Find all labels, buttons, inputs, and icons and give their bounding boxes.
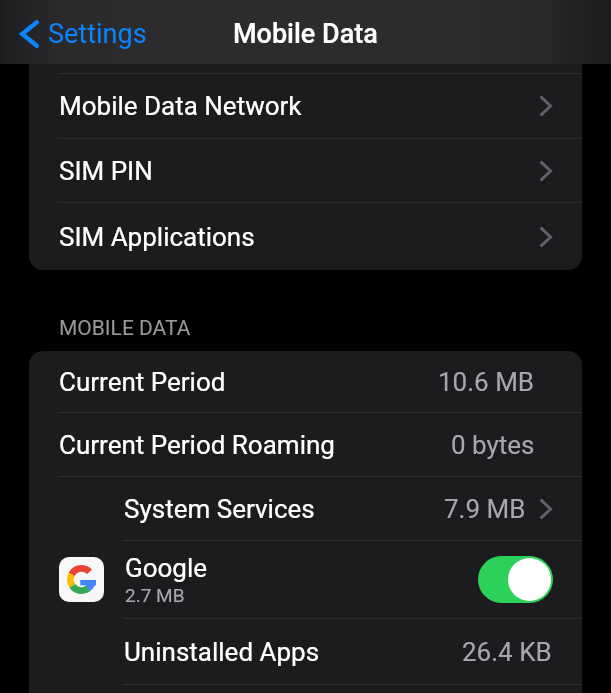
staticText: 10.6 MB	[438, 367, 535, 397]
staticText: System Services	[124, 494, 315, 524]
button[interactable]: Mobile data for Google, on	[478, 556, 553, 603]
button[interactable]: SIM PIN	[29, 139, 582, 202]
button[interactable]: System Services	[29, 477, 582, 540]
staticText: SIM PIN	[59, 156, 153, 186]
staticText: SIM Applications	[59, 222, 255, 252]
button[interactable]: Mobile Data Network	[29, 74, 582, 138]
button[interactable]: SIM Applications	[29, 203, 582, 270]
staticText: Mobile Data	[233, 18, 378, 50]
staticText: Settings	[48, 18, 147, 50]
staticText: Mobile Data Network	[59, 91, 302, 121]
staticText: Current Period	[59, 367, 226, 397]
button[interactable]: Current Period Roaming	[29, 413, 582, 476]
staticText: MOBILE DATA	[59, 316, 191, 341]
button[interactable]: Uninstalled Apps	[29, 619, 582, 684]
staticText: 7.9 MB	[444, 494, 526, 524]
button[interactable]: Google	[29, 541, 582, 618]
button[interactable]: Settings	[0, 8, 155, 56]
staticText: 0 bytes	[451, 430, 535, 460]
staticText: 26.4 KB	[462, 637, 552, 667]
staticText: Uninstalled Apps	[124, 637, 320, 667]
staticText: 2.7 MB	[125, 584, 185, 606]
button[interactable]: Current Period	[29, 351, 582, 412]
staticText: Current Period Roaming	[59, 430, 335, 460]
staticText: Google	[125, 553, 208, 583]
